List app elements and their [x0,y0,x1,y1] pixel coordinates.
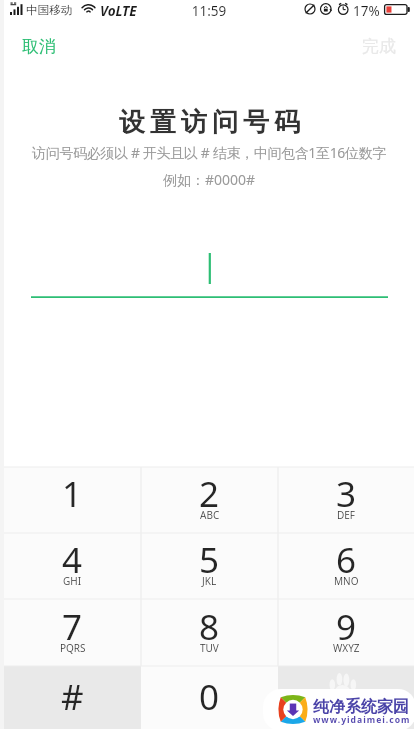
staticText: MNO [334,574,359,588]
button[interactable]: 6 [278,533,414,599]
staticText: 1 [62,470,83,518]
button[interactable]: 8 [141,599,278,666]
staticText: 例如：#0000# [2,170,414,189]
staticText: 6 [336,536,357,584]
staticText: JKL [202,574,217,588]
staticText: 3 [336,470,357,518]
button[interactable]: 7 [4,599,141,666]
staticText: www.yidaimei.com [313,714,411,726]
button[interactable]: 0 [141,666,278,729]
button[interactable]: 3 [278,467,414,533]
staticText: 访问号码必须以 # 开头且以 # 结束，中间包含1至16位数字 [2,143,414,162]
staticText: WXYZ [333,641,360,655]
staticText: TUV [200,641,219,655]
staticText: 5 [199,536,220,584]
staticText: DEF [337,508,356,522]
staticText: # [61,673,84,721]
button[interactable]: 取消 [4,30,74,62]
staticText: 0 [199,673,220,721]
button[interactable]: 2 [141,467,278,533]
button[interactable]: # [4,666,141,729]
staticText: ABC [200,508,220,522]
staticText: 11:59 [2,2,414,20]
staticText: 取消 [22,36,56,57]
button[interactable]: 完成 [344,30,414,62]
button[interactable]: 1 [4,467,141,533]
staticText: 8 [199,603,220,651]
staticText: 设置访问号码 [5,106,414,139]
staticText: PQRS [60,641,86,655]
staticText: 完成 [362,36,396,57]
staticText: 17% [353,2,380,20]
staticText: 2 [199,470,220,518]
staticText: 中国移动 [26,3,73,18]
staticText: 纯净系统家园 [313,697,409,717]
staticText: 4 [62,536,83,584]
button[interactable]: Hide keyboard [278,666,414,729]
staticText: 7 [62,603,83,651]
staticText: VoLTE [100,2,137,20]
button[interactable]: 9 [278,599,414,666]
button[interactable]: 5 [141,533,278,599]
staticText: 9 [336,603,357,651]
staticText: GHI [63,574,82,588]
button[interactable]: 4 [4,533,141,599]
